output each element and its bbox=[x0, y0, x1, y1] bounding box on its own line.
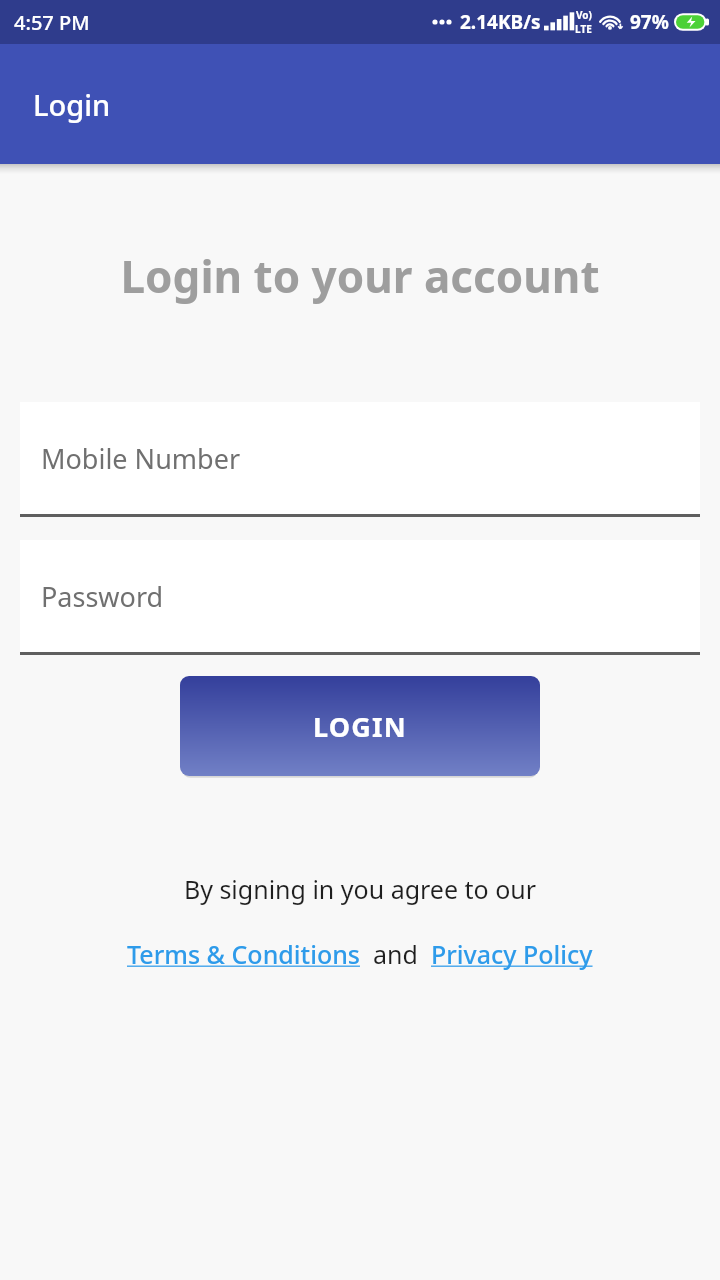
staticText: Mobile Number bbox=[41, 440, 241, 477]
staticText: By signing in you agree to our bbox=[0, 872, 720, 906]
staticText: LOGIN bbox=[313, 708, 407, 745]
button[interactable]: Password bbox=[20, 540, 700, 655]
staticText: Privacy Policy bbox=[431, 937, 593, 971]
button[interactable]: Mobile Number bbox=[20, 402, 700, 517]
button[interactable]: Privacy Policy bbox=[431, 937, 593, 971]
button[interactable]: Terms & Conditions bbox=[127, 937, 360, 971]
staticText: Login bbox=[33, 85, 111, 124]
staticText: Login to your account bbox=[0, 246, 720, 306]
staticText: 97% bbox=[630, 9, 669, 35]
staticText: LTE bbox=[575, 22, 592, 36]
staticText: 2.14KB/s bbox=[460, 9, 541, 35]
staticText: Password bbox=[41, 578, 164, 615]
staticText: and bbox=[360, 937, 431, 971]
staticText: 4:57 PM bbox=[14, 9, 90, 36]
staticText: Vo) bbox=[576, 8, 592, 22]
staticText: Terms & Conditions bbox=[127, 937, 360, 971]
button[interactable]: LOGIN bbox=[180, 676, 540, 776]
